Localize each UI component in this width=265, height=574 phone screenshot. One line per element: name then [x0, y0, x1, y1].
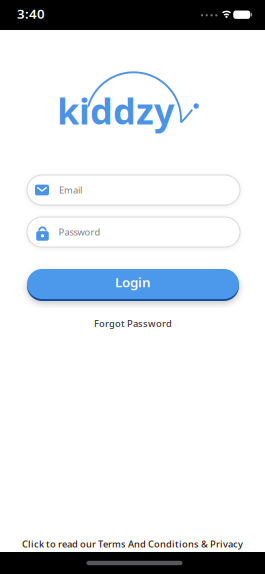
- button[interactable]: Click to read our Terms And Conditions &…: [22, 538, 243, 550]
- staticText: Forgot Password: [94, 317, 172, 330]
- staticText: Email: [59, 184, 82, 196]
- button[interactable]: Password: [27, 217, 240, 247]
- button[interactable]: Forgot Password: [94, 317, 172, 330]
- staticText: 3:40: [17, 5, 45, 22]
- staticText: Login: [115, 273, 151, 291]
- staticText: Click to read our Terms And Conditions &…: [22, 538, 243, 550]
- staticText: kiddzy: [57, 87, 175, 134]
- button[interactable]: Login: [27, 269, 239, 301]
- staticText: Password: [58, 226, 100, 238]
- button[interactable]: Email: [27, 175, 240, 205]
